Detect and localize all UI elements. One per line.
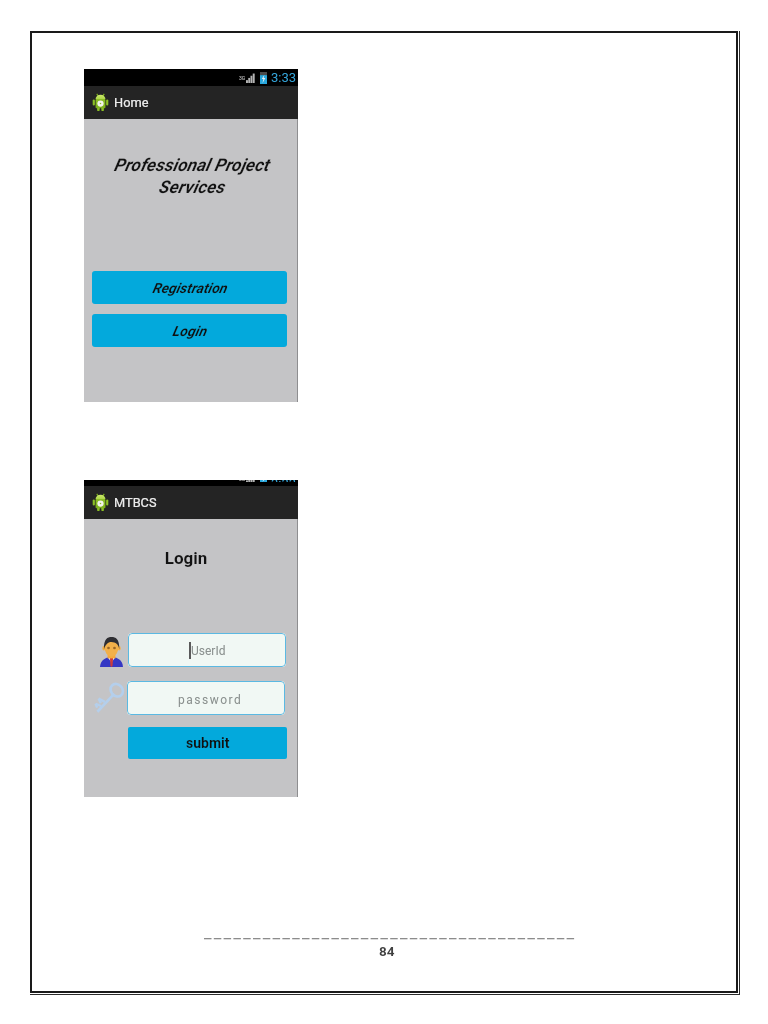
- other: App icon, up: [92, 493, 109, 512]
- staticText: submit: [186, 735, 230, 751]
- staticText: Login: [79, 548, 293, 568]
- button[interactable]: App icon, up: [84, 486, 298, 519]
- button[interactable]: App icon, up: [84, 86, 298, 119]
- staticText: Registration: [152, 280, 227, 296]
- staticText: 3G: [239, 75, 246, 81]
- staticText: password: [178, 693, 243, 707]
- button[interactable]: password: [127, 681, 285, 715]
- button[interactable]: Registration: [92, 271, 287, 304]
- button[interactable]: submit: [128, 727, 287, 759]
- staticText: Login: [172, 323, 207, 339]
- staticText: Home: [114, 95, 149, 110]
- button[interactable]: UserId: [128, 633, 286, 667]
- staticText: 3G: [239, 480, 246, 482]
- staticText: UserId: [191, 644, 226, 658]
- staticText: MTBCS: [114, 495, 157, 510]
- staticText: 3:33: [271, 70, 297, 85]
- button[interactable]: Login: [92, 314, 287, 347]
- staticText: 3:33: [271, 480, 297, 482]
- staticText: 84: [379, 943, 395, 959]
- other: App icon, up: [92, 93, 109, 112]
- staticText: Professional Project Services: [84, 155, 298, 197]
